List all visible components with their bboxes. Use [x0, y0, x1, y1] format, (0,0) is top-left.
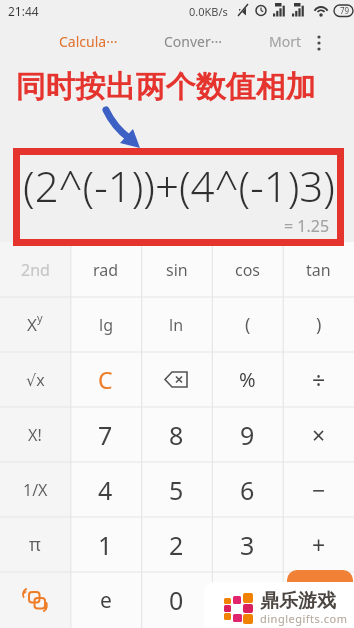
- button[interactable]: lg: [70, 297, 141, 352]
- button[interactable]: [314, 34, 324, 52]
- button[interactable]: rad: [70, 242, 141, 297]
- staticText: ×: [312, 419, 326, 450]
- staticText: y: [37, 310, 43, 325]
- button[interactable]: 9: [212, 407, 283, 462]
- staticText: e: [100, 586, 112, 615]
- button[interactable]: 0: [141, 572, 212, 628]
- staticText: 6: [240, 473, 255, 507]
- staticText: X!: [28, 424, 42, 446]
- staticText: rad: [93, 259, 119, 281]
- button[interactable]: −: [283, 462, 354, 517]
- button[interactable]: [287, 570, 353, 628]
- staticText: tan: [306, 259, 331, 281]
- button[interactable]: 5: [141, 462, 212, 517]
- staticText: 2nd: [21, 259, 50, 281]
- button[interactable]: [141, 352, 212, 407]
- button[interactable]: 7: [70, 407, 141, 462]
- button[interactable]: 8: [141, 407, 212, 462]
- staticText: 1/X: [23, 479, 48, 501]
- staticText: −: [312, 474, 326, 505]
- button[interactable]: 6: [212, 462, 283, 517]
- staticText: 7: [98, 418, 113, 452]
- button[interactable]: [0, 572, 70, 628]
- staticText: C: [98, 364, 113, 395]
- button[interactable]: .: [212, 572, 283, 628]
- staticText: √x: [26, 369, 45, 391]
- staticText: ÷: [312, 364, 326, 395]
- staticText: ln: [169, 314, 184, 336]
- button[interactable]: ÷: [283, 352, 354, 407]
- button[interactable]: ): [283, 297, 354, 352]
- button[interactable]: X: [0, 297, 70, 352]
- staticText: +: [312, 529, 326, 560]
- staticText: 鼎乐游戏: [260, 589, 336, 613]
- staticText: 21:44: [8, 3, 39, 19]
- button[interactable]: (: [212, 297, 283, 352]
- staticText: 1: [98, 528, 113, 562]
- button[interactable]: X!: [0, 407, 70, 462]
- staticText: 0: [169, 583, 184, 617]
- staticText: 0.0KB/s: [189, 4, 228, 19]
- staticText: dinglegifts.com: [260, 611, 348, 626]
- staticText: lg: [99, 314, 113, 336]
- button[interactable]: sin: [141, 242, 212, 297]
- button[interactable]: Calcula···: [59, 32, 118, 51]
- staticText: π: [29, 532, 41, 557]
- button[interactable]: +: [283, 517, 354, 572]
- button[interactable]: ×: [283, 407, 354, 462]
- staticText: (: [245, 312, 251, 337]
- staticText: 79: [340, 5, 350, 16]
- button[interactable]: √x: [0, 352, 70, 407]
- staticText: 9: [240, 418, 255, 452]
- button[interactable]: 3: [212, 517, 283, 572]
- button[interactable]: Mort: [269, 32, 302, 51]
- button[interactable]: 1: [70, 517, 141, 572]
- staticText: 2: [169, 528, 184, 562]
- button[interactable]: 1/X: [0, 462, 70, 517]
- staticText: %: [239, 366, 256, 393]
- button[interactable]: π: [0, 517, 70, 572]
- staticText: 5: [169, 473, 184, 507]
- staticText: ): [316, 312, 322, 337]
- staticText: (2^(-1))+(4^(-1)3): [23, 157, 335, 214]
- button[interactable]: e: [70, 572, 141, 628]
- button[interactable]: tan: [283, 242, 354, 297]
- staticText: .: [244, 583, 251, 617]
- staticText: sin: [166, 259, 188, 281]
- button[interactable]: cos: [212, 242, 283, 297]
- staticText: cos: [235, 259, 261, 281]
- button[interactable]: ln: [141, 297, 212, 352]
- button[interactable]: Conver···: [164, 32, 223, 51]
- staticText: 同时按出两个数值相加: [0, 68, 331, 106]
- staticText: 4: [98, 473, 113, 507]
- button[interactable]: %: [212, 352, 283, 407]
- staticText: 8: [169, 418, 184, 452]
- staticText: = 1.25: [284, 215, 330, 237]
- button[interactable]: 2nd: [0, 242, 70, 297]
- button[interactable]: 2: [141, 517, 212, 572]
- button[interactable]: C: [70, 352, 141, 407]
- button[interactable]: [283, 572, 354, 628]
- staticText: X: [27, 313, 37, 336]
- button[interactable]: 4: [70, 462, 141, 517]
- staticText: 3: [240, 528, 255, 562]
